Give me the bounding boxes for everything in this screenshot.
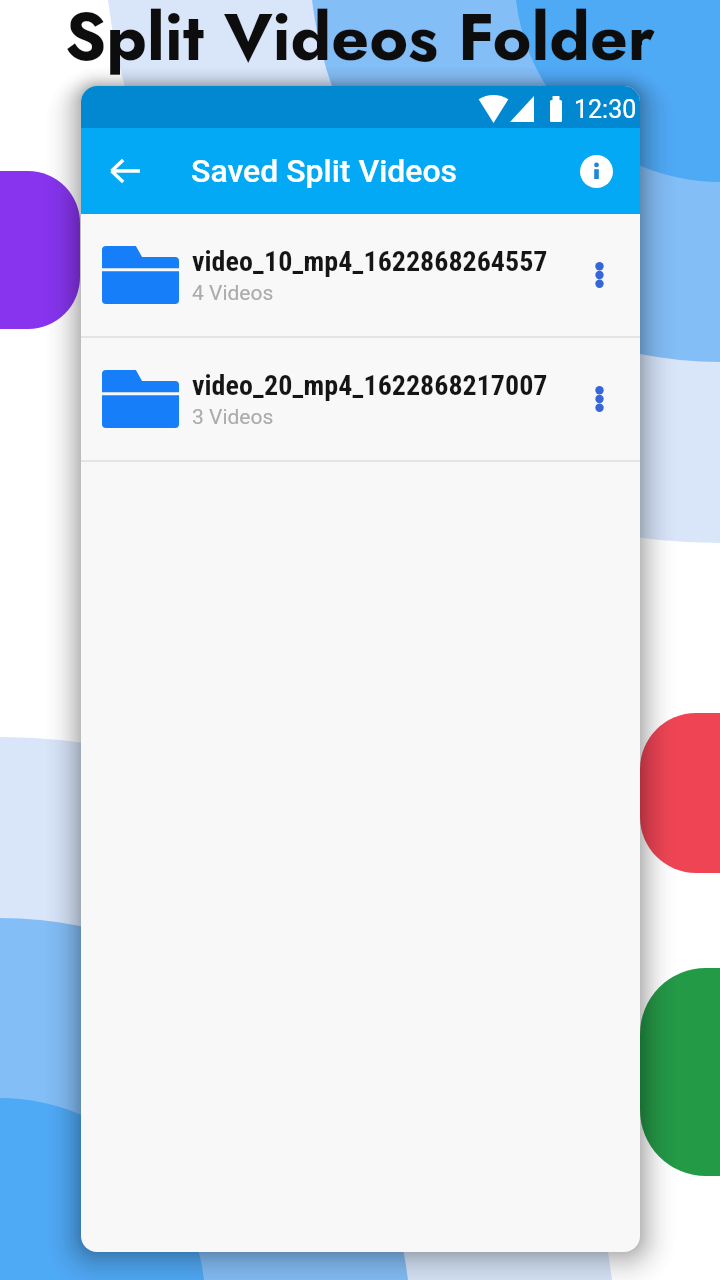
button[interactable]: More options [558, 214, 640, 336]
staticText: 4 Videos [192, 281, 274, 306]
button[interactable]: Info [573, 148, 619, 194]
staticText: video_20_mp4_1622868217007 [192, 369, 548, 402]
button[interactable]: Back [102, 148, 148, 194]
button[interactable]: More options [558, 338, 640, 460]
staticText: 12:30 [574, 95, 637, 124]
button[interactable]: video_20_mp4_1622868217007 [81, 338, 640, 460]
staticText: 3 Videos [192, 405, 274, 430]
staticText: video_10_mp4_1622868264557 [192, 245, 548, 278]
staticText: Split Videos Folder [0, 0, 720, 84]
staticText: Saved Split Videos [191, 152, 458, 190]
button[interactable]: video_10_mp4_1622868264557 [81, 214, 640, 336]
